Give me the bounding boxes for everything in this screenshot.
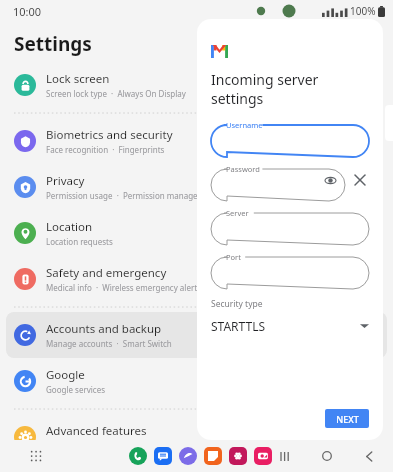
staticText: NEXT bbox=[336, 413, 359, 425]
staticText: Google bbox=[46, 367, 85, 383]
button[interactable]: Show password bbox=[323, 173, 337, 187]
button[interactable]: Advanced features bbox=[6, 414, 387, 460]
button[interactable]: Internet bbox=[179, 447, 197, 465]
staticText: Medical info · Wireless emergency alerts bbox=[46, 282, 201, 293]
button[interactable]: Lock screen bbox=[6, 62, 387, 108]
staticText: 100% bbox=[350, 4, 376, 18]
staticText: Settings bbox=[14, 31, 92, 57]
staticText: 10:00 bbox=[13, 4, 42, 19]
staticText: Android Auto · Labs · Bixby Routines bbox=[46, 440, 190, 451]
staticText: Biometrics and security bbox=[46, 127, 173, 143]
button[interactable]: Back bbox=[359, 446, 379, 466]
button[interactable]: Camera bbox=[254, 447, 272, 465]
staticText: Port bbox=[226, 252, 241, 262]
button[interactable]: NEXT bbox=[325, 409, 369, 428]
button[interactable]: STARTTLS bbox=[211, 316, 369, 336]
button[interactable]: Notes bbox=[204, 447, 222, 465]
staticText: Screen lock type · Always On Display bbox=[46, 88, 186, 99]
button[interactable]: Messages bbox=[154, 447, 172, 465]
staticText: Server bbox=[226, 208, 249, 218]
staticText: Advanced features bbox=[46, 423, 147, 439]
staticText: Google services bbox=[46, 384, 106, 395]
button[interactable]: Home bbox=[317, 446, 337, 466]
staticText: Manage accounts · Smart Switch bbox=[46, 338, 172, 349]
button[interactable]: Privacy bbox=[6, 164, 387, 210]
staticText: Location requests bbox=[46, 236, 113, 247]
button[interactable]: Recent apps bbox=[275, 446, 295, 466]
staticText: Safety and emergency bbox=[46, 265, 167, 281]
button[interactable]: All apps bbox=[26, 446, 46, 466]
button[interactable]: Gallery bbox=[229, 447, 247, 465]
staticText: Location bbox=[46, 219, 93, 235]
staticText: Username bbox=[226, 120, 263, 130]
button[interactable]: Google bbox=[6, 358, 387, 404]
staticText: Privacy bbox=[46, 173, 85, 189]
staticText: Face recognition · Fingerprints bbox=[46, 144, 165, 155]
button[interactable]: Accounts and backup bbox=[6, 312, 387, 358]
staticText: Lock screen bbox=[46, 71, 110, 87]
staticText: Accounts and backup bbox=[46, 321, 162, 337]
button[interactable]: Location bbox=[6, 210, 387, 256]
button[interactable]: Server bbox=[211, 208, 369, 240]
staticText: STARTTLS bbox=[211, 318, 266, 334]
button[interactable]: Safety and emergency bbox=[6, 256, 387, 302]
button[interactable]: Password bbox=[211, 164, 345, 196]
button[interactable]: Clear password bbox=[351, 171, 369, 189]
button[interactable]: Username bbox=[211, 120, 369, 152]
staticText: Security type bbox=[211, 298, 263, 310]
staticText: Permission usage · Permission manager bbox=[46, 190, 201, 201]
button[interactable]: Port bbox=[211, 252, 369, 284]
button[interactable]: Phone bbox=[129, 447, 147, 465]
staticText: Incoming server settings bbox=[211, 70, 369, 108]
button[interactable]: Biometrics and security bbox=[6, 118, 387, 164]
staticText: Password bbox=[226, 164, 260, 174]
